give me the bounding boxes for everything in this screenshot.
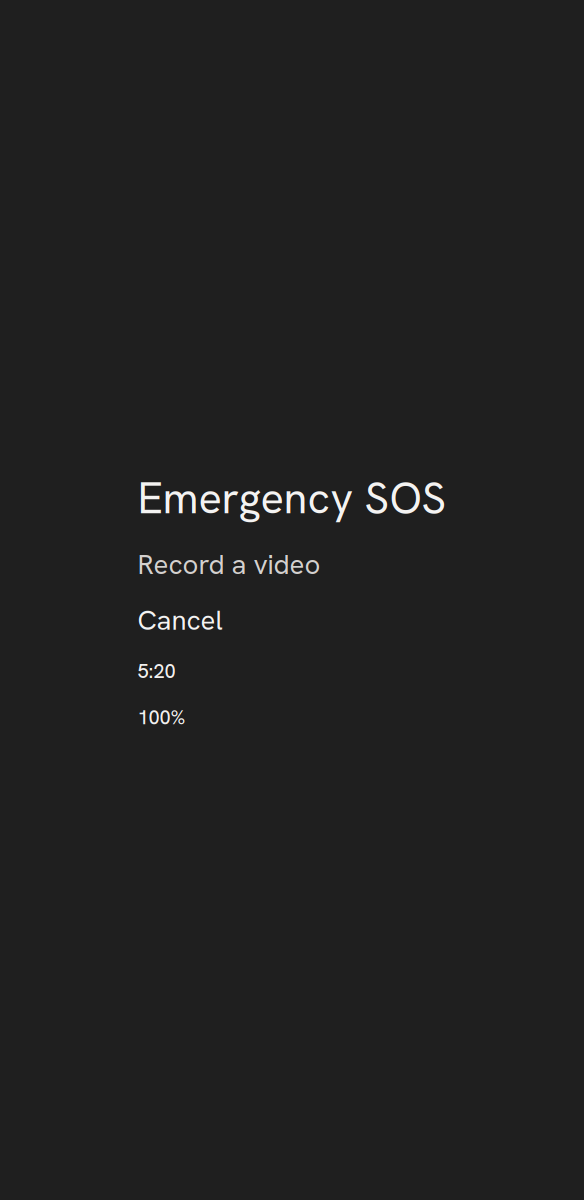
staticText: 100% [137, 704, 185, 730]
staticText: Record a video [137, 546, 320, 582]
staticText: Emergency SOS [137, 470, 446, 526]
staticText: 5:20 [137, 658, 175, 684]
staticText: Cancel [137, 602, 222, 638]
